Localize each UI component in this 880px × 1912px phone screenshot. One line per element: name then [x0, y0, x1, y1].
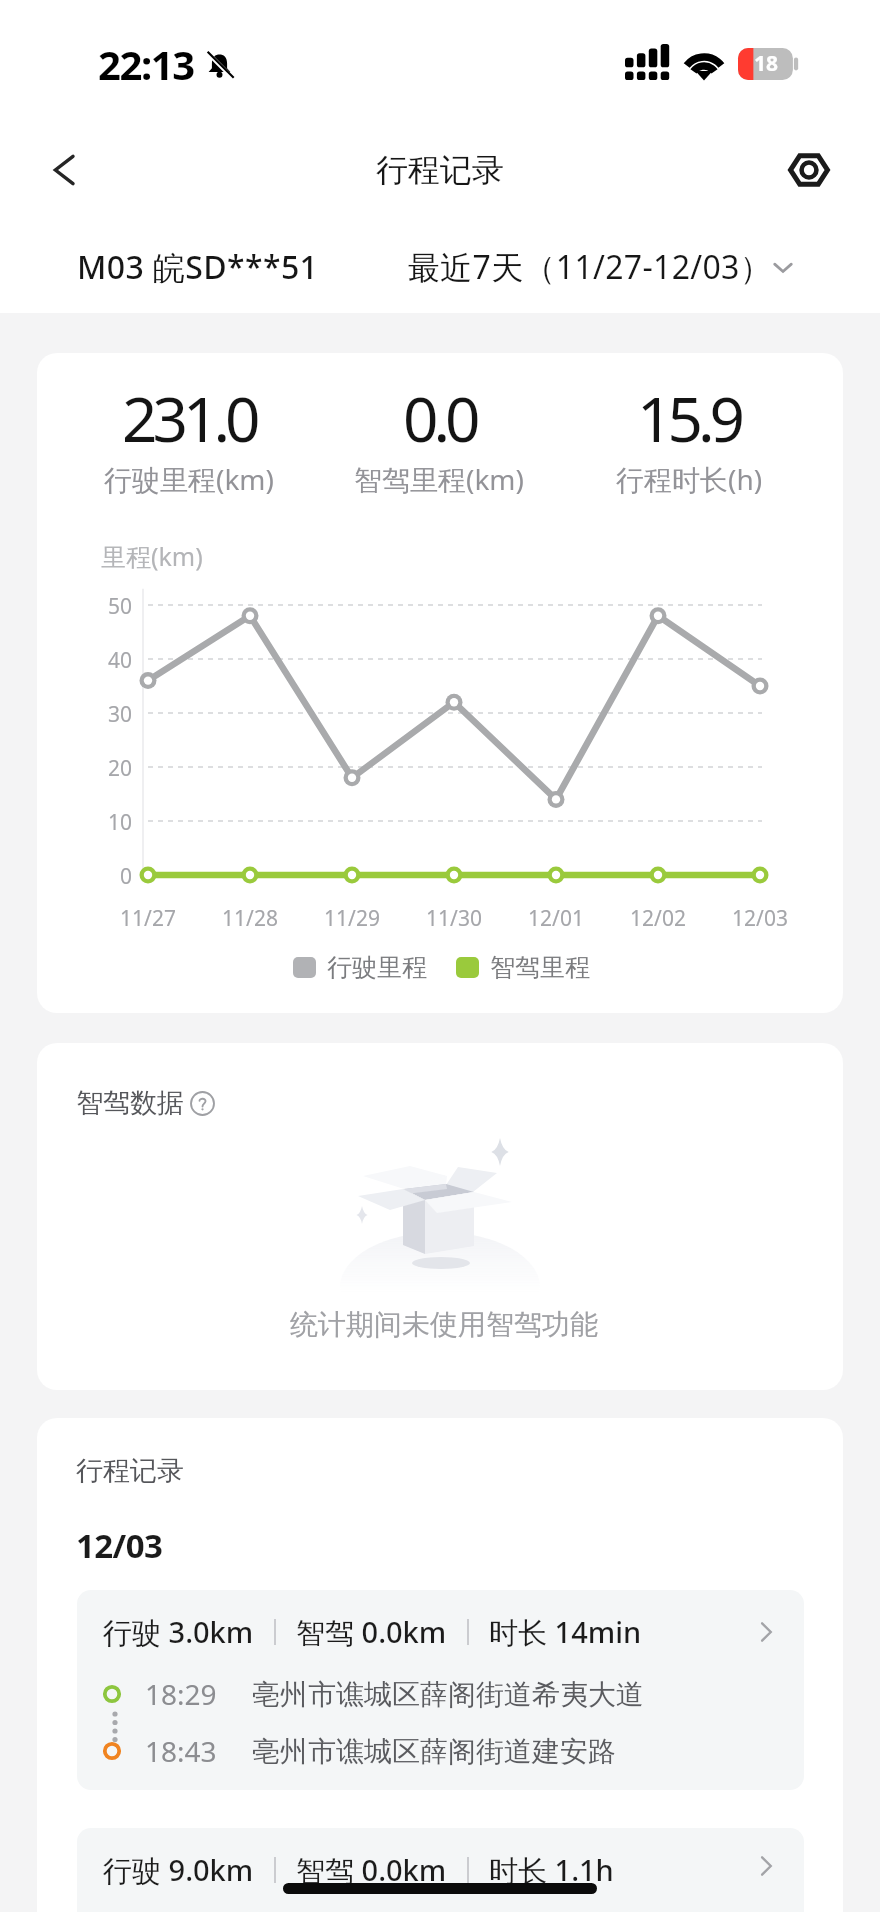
- staticText: 18:29: [145, 1675, 217, 1713]
- staticText: 12/03: [76, 1523, 163, 1568]
- staticText: 11/27: [98, 904, 198, 933]
- staticText: 12/03: [710, 904, 810, 933]
- staticText: 12/01: [506, 904, 606, 933]
- staticText: 30: [40, 700, 132, 729]
- staticText: 18:43: [145, 1732, 217, 1770]
- staticText: 11/28: [200, 904, 300, 933]
- staticText: 0: [40, 862, 132, 891]
- button[interactable]: Settings: [773, 134, 845, 206]
- staticText: 行程记录: [76, 1454, 184, 1488]
- staticText: 40: [40, 646, 132, 675]
- staticText: 11/30: [404, 904, 504, 933]
- staticText: 最近7天（11/27-12/03）: [408, 245, 772, 289]
- staticText: 12/02: [608, 904, 708, 933]
- staticText: 15.9: [637, 376, 741, 460]
- staticText: 智驾里程: [490, 952, 590, 983]
- staticText: 行驶里程: [327, 952, 427, 983]
- staticText: 20: [40, 754, 132, 783]
- staticText: 时长 1.1h: [489, 1850, 614, 1890]
- staticText: 亳州市谯城区薛阁街道希夷大道: [252, 1677, 644, 1712]
- button[interactable]: Back: [29, 134, 101, 206]
- staticText: 智驾数据: [76, 1086, 184, 1120]
- button[interactable]: 行驶 3.0km: [77, 1590, 804, 1790]
- staticText: 行程时长(h): [616, 460, 763, 498]
- staticText: 行驶 3.0km: [103, 1612, 254, 1652]
- staticText: 50: [40, 592, 132, 621]
- staticText: 统计期间未使用智驾功能: [41, 1307, 843, 1342]
- staticText: 里程(km): [101, 539, 203, 573]
- staticText: 行程记录: [376, 150, 504, 190]
- button[interactable]: 行驶 9.0km: [77, 1828, 804, 1912]
- staticText: 行驶里程(km): [104, 460, 274, 498]
- staticText: 0.0: [403, 376, 476, 460]
- button[interactable]: 最近7天（11/27-12/03）: [400, 231, 810, 303]
- button[interactable]: 智驾数据说明: [190, 1091, 215, 1116]
- staticText: 行驶 9.0km: [103, 1850, 254, 1890]
- staticText: 亳州市谯城区薛阁街道建安路: [252, 1734, 616, 1769]
- staticText: 22:13: [98, 37, 194, 91]
- staticText: 231.0: [122, 376, 256, 460]
- staticText: M03 皖SD***51: [77, 245, 319, 289]
- staticText: 11/29: [302, 904, 402, 933]
- staticText: 智驾 0.0km: [296, 1612, 447, 1652]
- staticText: 10: [40, 808, 132, 837]
- staticText: 时长 14min: [489, 1612, 642, 1652]
- staticText: 智驾里程(km): [354, 460, 524, 498]
- staticText: 智驾 0.0km: [296, 1850, 447, 1890]
- staticText: 18: [754, 49, 779, 78]
